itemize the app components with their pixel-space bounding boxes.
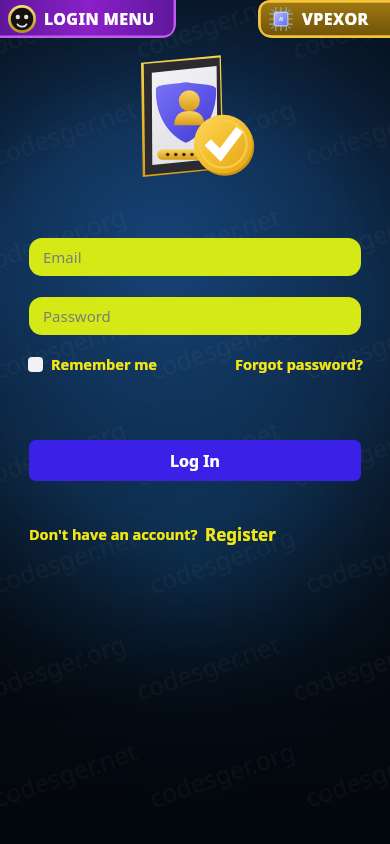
staticText: codesger.org [0,626,130,708]
staticText: codesger.org [288,0,390,66]
staticText: Register [205,523,276,546]
staticText: LOGIN MENU [44,8,155,30]
button[interactable]: VPEXOR [258,0,390,38]
staticText: codesger.net [301,91,390,172]
staticText: codesger.org [288,198,390,280]
staticText: Email [43,247,82,267]
staticText: codesger.net [132,0,284,65]
staticText: codesger.org [145,519,299,601]
button[interactable]: Log In [29,440,361,481]
button[interactable]: LOGIN MENU [0,0,176,38]
staticText: codesger.net [0,91,141,172]
staticText: codesger.net [132,412,284,493]
staticText: codesger.net [301,305,390,386]
staticText: VPEXOR [302,8,369,30]
staticText: codesger.org [0,412,130,494]
staticText: codesger.org [0,198,130,280]
staticText: Log In [170,450,220,472]
staticText: codesger.org [145,305,299,387]
button[interactable]: Forgot password? [235,352,363,376]
staticText: codesger.net [0,305,141,386]
button[interactable]: Email [29,238,361,276]
staticText: codesger.net [132,198,284,279]
staticText: Password [43,306,111,326]
staticText: codesger.org [288,626,390,708]
staticText: codesger.org [145,91,299,173]
button[interactable]: Register [205,523,276,546]
staticText: codesger.org [0,0,130,66]
button[interactable]: Password [29,297,361,335]
staticText: Forgot password? [235,354,363,374]
staticText: codesger.net [132,626,284,707]
staticText: Remember me [51,354,157,374]
staticText: codesger.org [288,412,390,494]
button[interactable]: Remember me [27,352,158,376]
staticText: Don't have an account? [29,524,198,544]
staticText: codesger.net [0,519,141,600]
staticText: codesger.net [301,519,390,600]
